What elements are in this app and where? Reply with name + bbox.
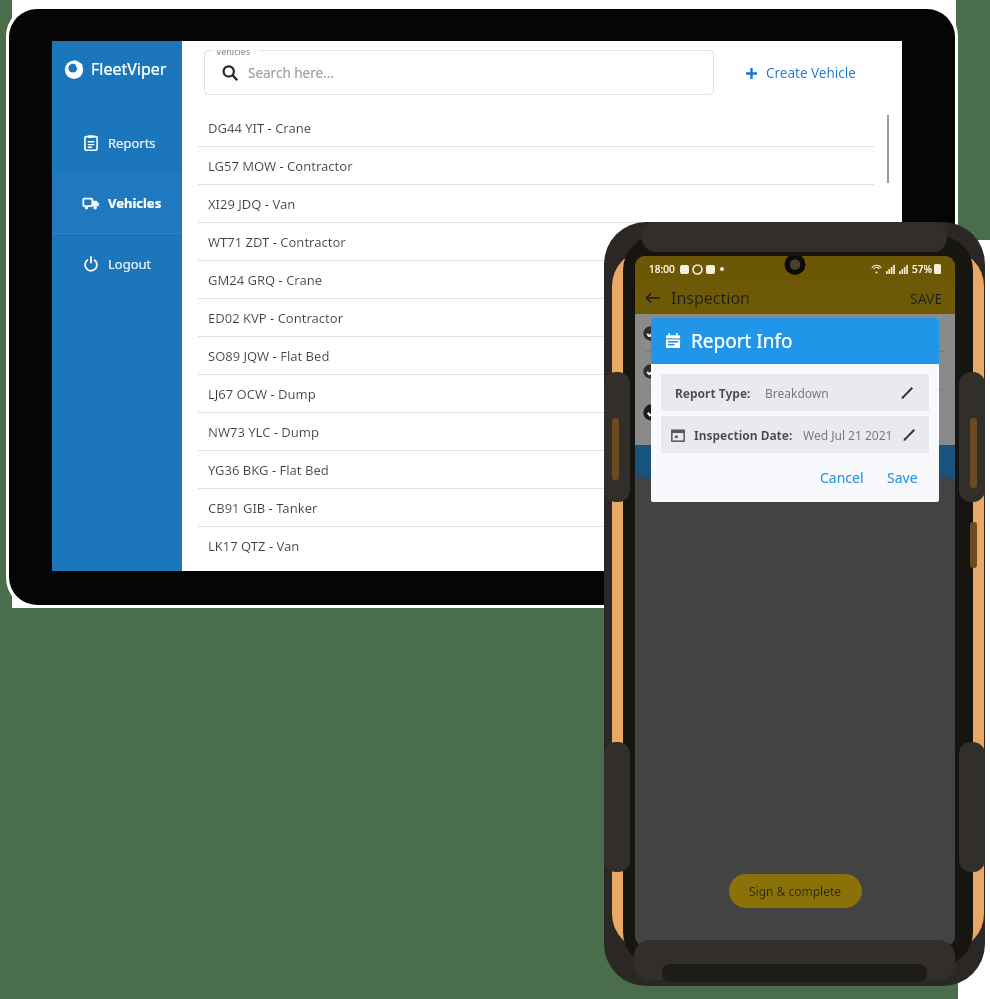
button[interactable]: Cancel xyxy=(811,463,873,492)
button[interactable]: NW73 YLC - Dump xyxy=(182,413,902,451)
button[interactable]: XI29 JDQ - Van xyxy=(182,185,902,223)
staticText: LK17 QTZ - Van xyxy=(208,537,300,555)
staticText: FleetViper xyxy=(91,58,167,80)
button[interactable]: LG57 MOW - Contractor xyxy=(182,147,902,185)
button[interactable]: ED02 KVP - Contractor xyxy=(182,299,902,337)
button[interactable]: SAVE xyxy=(898,283,955,314)
staticText: Inspection xyxy=(671,287,750,309)
staticText: 57% xyxy=(912,262,932,276)
staticText: Create Rectification xyxy=(725,452,844,470)
staticText: 18:00 xyxy=(649,262,675,276)
button[interactable]: Save xyxy=(878,463,927,492)
staticText: Create Vehicle xyxy=(766,64,856,82)
staticText: Vehicles xyxy=(216,50,251,57)
button[interactable]: Create Rectification xyxy=(635,445,955,477)
button[interactable]: Back xyxy=(635,282,671,314)
button[interactable]: Create Vehicle xyxy=(735,58,866,88)
staticText: Wed Jul 21 2021 xyxy=(803,427,893,443)
staticText: Cancel xyxy=(820,468,864,487)
staticText: Sign & complete xyxy=(749,883,842,899)
button[interactable]: Vehicles xyxy=(204,50,714,95)
staticText: Save xyxy=(887,468,918,487)
button[interactable]: Reports xyxy=(52,113,182,173)
button[interactable]: LK17 QTZ - Van xyxy=(182,527,902,565)
staticText: Reports xyxy=(108,134,156,152)
staticText: NW73 YLC - Dump xyxy=(208,423,319,441)
button[interactable]: FleetViper xyxy=(52,41,182,97)
staticText: Vehicles xyxy=(108,194,162,212)
staticText: Breakdown xyxy=(765,385,829,401)
button[interactable]: Sign & complete xyxy=(729,874,862,908)
button[interactable]: Vehicles xyxy=(52,173,182,233)
button[interactable]: CB91 GIB - Tanker xyxy=(182,489,902,527)
staticText: LJ67 OCW - Dump xyxy=(208,385,316,403)
button[interactable]: WT71 ZDT - Contractor xyxy=(182,223,902,261)
staticText: Report Info xyxy=(691,328,793,354)
staticText: SO89 JQW - Flat Bed xyxy=(208,347,330,365)
staticText: WT71 ZDT - Contractor xyxy=(208,233,346,251)
button[interactable]: LJ67 OCW - Dump xyxy=(182,375,902,413)
staticText: SAVE xyxy=(910,289,943,308)
staticText: Logout xyxy=(108,255,152,273)
staticText: LG57 MOW - Contractor xyxy=(208,157,353,175)
staticText: Report Type: xyxy=(675,385,751,401)
button[interactable]: Logout xyxy=(52,234,182,294)
staticText: ED02 KVP - Contractor xyxy=(208,309,344,327)
staticText: XI29 JDQ - Van xyxy=(208,195,296,213)
button[interactable]: YG36 BKG - Flat Bed xyxy=(182,451,902,489)
button[interactable]: SO89 JQW - Flat Bed xyxy=(182,337,902,375)
staticText: GM24 GRQ - Crane xyxy=(208,271,323,289)
button[interactable]: GM24 GRQ - Crane xyxy=(182,261,902,299)
staticText: Inspection Date: xyxy=(694,427,793,443)
staticText: DG44 YIT - Crane xyxy=(208,119,312,137)
staticText: Adjusted/Calibrated/Tightened xyxy=(668,422,947,437)
staticText: Search here... xyxy=(248,64,334,82)
staticText: YG36 BKG - Flat Bed xyxy=(208,461,329,479)
button[interactable]: DG44 YIT - Crane xyxy=(182,109,902,147)
staticText: CB91 GIB - Tanker xyxy=(208,499,318,517)
button[interactable]: Inspection Date: xyxy=(661,416,929,453)
button[interactable]: Report Type: xyxy=(661,374,929,411)
staticText: Seat belts and supplementary restraint s… xyxy=(668,404,914,419)
